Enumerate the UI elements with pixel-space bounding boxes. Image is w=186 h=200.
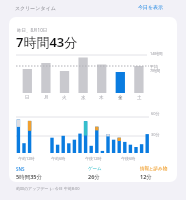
staticText: 30分 bbox=[151, 132, 160, 137]
staticText: 土 bbox=[137, 95, 142, 101]
staticText: 12分 bbox=[140, 173, 152, 181]
staticText: 26分 bbox=[88, 173, 100, 181]
staticText: 14時間 bbox=[150, 51, 163, 56]
staticText: 5時間35分 bbox=[16, 173, 42, 181]
button[interactable]: ゲーム bbox=[88, 166, 102, 172]
button[interactable]: SNS bbox=[16, 166, 25, 172]
staticText: 前回のアップデート: 今日 午前8:00 bbox=[16, 186, 80, 191]
staticText: 日 bbox=[25, 95, 30, 101]
staticText: 昨日、8月10日 bbox=[17, 27, 48, 33]
button[interactable]: 情報と読み物 bbox=[140, 166, 168, 172]
staticText: SNS bbox=[16, 166, 25, 172]
staticText: 午後12時 bbox=[85, 156, 102, 161]
staticText: 7時間43分 bbox=[16, 33, 78, 51]
staticText: 午前12時 bbox=[18, 156, 35, 161]
staticText: 火 bbox=[62, 95, 67, 101]
staticText: 今日を表示 bbox=[138, 4, 164, 10]
staticText: 午後6時 bbox=[121, 156, 136, 161]
staticText: 水 bbox=[81, 95, 86, 101]
staticText: 午前6時 bbox=[51, 156, 66, 161]
staticText: スクリーンタイム bbox=[15, 5, 56, 11]
staticText: 情報と読み物 bbox=[140, 166, 168, 172]
staticText: 金 bbox=[118, 95, 123, 101]
staticText: 60分 bbox=[151, 111, 160, 116]
staticText: ゲーム bbox=[88, 166, 102, 172]
staticText: 7時間 bbox=[150, 68, 161, 73]
button[interactable] bbox=[9, 17, 177, 182]
staticText: 月 bbox=[44, 95, 49, 101]
staticText: 木 bbox=[99, 95, 104, 101]
button[interactable]: 今日を表示 bbox=[138, 4, 164, 10]
staticText: 平均 bbox=[150, 64, 158, 69]
